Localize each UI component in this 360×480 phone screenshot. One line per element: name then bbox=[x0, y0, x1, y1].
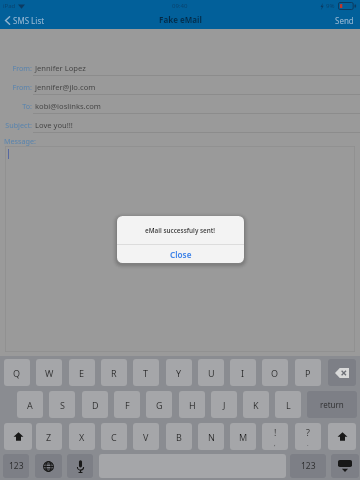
staticText: 09:40 bbox=[172, 2, 188, 10]
button[interactable]: L bbox=[275, 391, 301, 418]
staticText: kobi@ioslinks.com bbox=[35, 101, 101, 111]
button[interactable]: X bbox=[69, 423, 95, 450]
staticText: N bbox=[208, 431, 215, 443]
staticText: A bbox=[27, 399, 33, 411]
button[interactable]: T bbox=[133, 359, 159, 386]
button[interactable]: R bbox=[101, 359, 127, 386]
button[interactable]: S bbox=[49, 391, 75, 418]
staticText: 9% bbox=[326, 2, 335, 10]
button[interactable]: O bbox=[262, 359, 288, 386]
button[interactable]: C bbox=[101, 423, 127, 450]
staticText: R bbox=[111, 367, 117, 379]
button[interactable]: Y bbox=[166, 359, 192, 386]
button[interactable]: E bbox=[69, 359, 95, 386]
staticText: 123 bbox=[301, 460, 316, 472]
staticText: E bbox=[79, 367, 85, 379]
staticText: L bbox=[286, 399, 291, 411]
staticText: jennifer@jlo.com bbox=[35, 82, 96, 92]
button[interactable]: Send bbox=[329, 11, 360, 29]
staticText: Message: bbox=[4, 136, 36, 146]
staticText: V bbox=[143, 431, 149, 443]
staticText: Q bbox=[13, 367, 21, 379]
staticText: From: bbox=[0, 82, 32, 92]
staticText: J bbox=[223, 399, 226, 411]
staticText: Subject: bbox=[0, 120, 32, 130]
button[interactable]: ? bbox=[295, 423, 321, 450]
button[interactable]: I bbox=[230, 359, 256, 386]
button[interactable]: SMS List bbox=[0, 11, 51, 29]
staticText: , bbox=[274, 440, 276, 448]
staticText: T bbox=[143, 367, 149, 379]
staticText: return bbox=[320, 399, 344, 410]
staticText: K bbox=[253, 399, 259, 411]
staticText: P bbox=[305, 367, 311, 379]
staticText: SMS List bbox=[13, 15, 45, 26]
staticText: To: bbox=[0, 101, 32, 111]
button[interactable]: Change language bbox=[35, 454, 62, 478]
staticText: Y bbox=[176, 367, 182, 379]
button[interactable]: U bbox=[198, 359, 224, 386]
staticText: H bbox=[189, 399, 196, 411]
staticText: S bbox=[60, 399, 65, 411]
staticText: . bbox=[307, 440, 309, 448]
button[interactable]: B bbox=[166, 423, 192, 450]
button[interactable]: Dictate bbox=[67, 454, 93, 478]
staticText: From: bbox=[0, 63, 32, 73]
button[interactable]: ! bbox=[262, 423, 288, 450]
staticText: B bbox=[176, 431, 182, 443]
staticText: Z bbox=[46, 431, 52, 443]
button[interactable]: Shift bbox=[4, 423, 32, 450]
button[interactable]: A bbox=[17, 391, 43, 418]
button[interactable]: return bbox=[307, 391, 357, 418]
button[interactable]: D bbox=[82, 391, 108, 418]
button[interactable]: K bbox=[243, 391, 269, 418]
button[interactable]: Q bbox=[4, 359, 30, 386]
staticText: ! bbox=[274, 426, 277, 438]
button[interactable]: Backspace bbox=[328, 359, 356, 386]
button[interactable]: J bbox=[211, 391, 237, 418]
staticText: Love you!!! bbox=[35, 120, 73, 130]
button[interactable]: P bbox=[295, 359, 321, 386]
button[interactable]: F bbox=[114, 391, 140, 418]
staticText: W bbox=[45, 367, 54, 379]
staticText: 123 bbox=[9, 460, 24, 472]
button[interactable]: M bbox=[230, 423, 256, 450]
staticText: ? bbox=[306, 426, 310, 438]
button[interactable]: H bbox=[179, 391, 205, 418]
staticText: G bbox=[156, 399, 163, 411]
button[interactable]: W bbox=[36, 359, 62, 386]
button[interactable]: Close bbox=[117, 245, 244, 263]
button[interactable]: Z bbox=[36, 423, 62, 450]
staticText: Close bbox=[170, 249, 192, 260]
staticText: Jennifer Lopez bbox=[35, 63, 86, 73]
staticText: C bbox=[111, 431, 117, 443]
button[interactable]: V bbox=[133, 423, 159, 450]
button[interactable]: Shift bbox=[328, 423, 356, 450]
button[interactable]: 123 bbox=[290, 454, 326, 478]
staticText: iPad bbox=[3, 2, 16, 10]
staticText: D bbox=[92, 399, 99, 411]
staticText: X bbox=[79, 431, 85, 443]
staticText: U bbox=[208, 367, 215, 379]
staticText: I bbox=[241, 367, 245, 379]
button[interactable]: N bbox=[198, 423, 224, 450]
staticText: M bbox=[239, 431, 248, 443]
staticText: O bbox=[271, 367, 279, 379]
button[interactable]: Hide keyboard bbox=[331, 454, 359, 478]
staticText: F bbox=[125, 399, 130, 411]
button[interactable]: 123 bbox=[3, 454, 29, 478]
staticText: Send bbox=[335, 15, 354, 26]
staticText: Fake eMail bbox=[159, 14, 202, 25]
staticText: eMail successfuly sent! bbox=[145, 226, 216, 235]
button[interactable]: G bbox=[146, 391, 172, 418]
